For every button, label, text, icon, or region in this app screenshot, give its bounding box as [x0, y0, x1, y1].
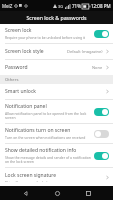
button[interactable]: Toggle off	[94, 130, 109, 138]
button[interactable]: Home	[50, 186, 64, 200]
staticText: Show detailed notification info	[5, 147, 77, 154]
button[interactable]: Show detailed notification info	[0, 144, 113, 167]
button[interactable]: Notifications turn on screen	[0, 124, 113, 143]
button[interactable]: Notification panel	[0, 100, 113, 123]
button[interactable]: Recents	[81, 186, 95, 200]
staticText: Show the message details and sender of a…	[5, 155, 91, 164]
staticText: Notifications turn on screen	[5, 127, 71, 134]
staticText: 12:08 PM	[91, 3, 111, 9]
staticText: Default (magazine)	[67, 49, 103, 54]
button[interactable]: Password	[0, 60, 113, 75]
staticText: Turn on the screen when notifications ar…	[5, 135, 86, 140]
button[interactable]: Toggle on	[94, 108, 109, 116]
staticText: Others	[5, 77, 19, 83]
button[interactable]: Smart unlock	[0, 84, 113, 99]
staticText: This will appear on the lock screen	[5, 180, 60, 182]
staticText: Screen lock style	[5, 48, 44, 55]
staticText: Screen lock & passwords	[26, 14, 87, 21]
button[interactable]: Back	[18, 186, 32, 200]
staticText: Require your phone to be unlocked before…	[5, 35, 86, 40]
staticText: 3G	[58, 4, 64, 9]
staticText: None	[92, 65, 103, 70]
staticText: 71%	[72, 3, 81, 9]
button[interactable]: Screen lock style	[0, 44, 113, 59]
button[interactable]: Lock screen signature	[0, 168, 113, 186]
staticText: MeiZ	[2, 3, 13, 9]
button[interactable]: Screen lock	[0, 24, 113, 43]
button[interactable]: Toggle on	[94, 30, 109, 38]
staticText: Screen lock	[5, 27, 32, 34]
staticText: Lock screen signature	[5, 172, 57, 179]
staticText: Allow notification panel to be opened fr…	[5, 111, 91, 120]
staticText: Smart unlock	[5, 88, 36, 95]
button[interactable]: Toggle on	[94, 152, 109, 160]
staticText: Password	[5, 64, 28, 71]
staticText: Notification panel	[5, 103, 47, 110]
